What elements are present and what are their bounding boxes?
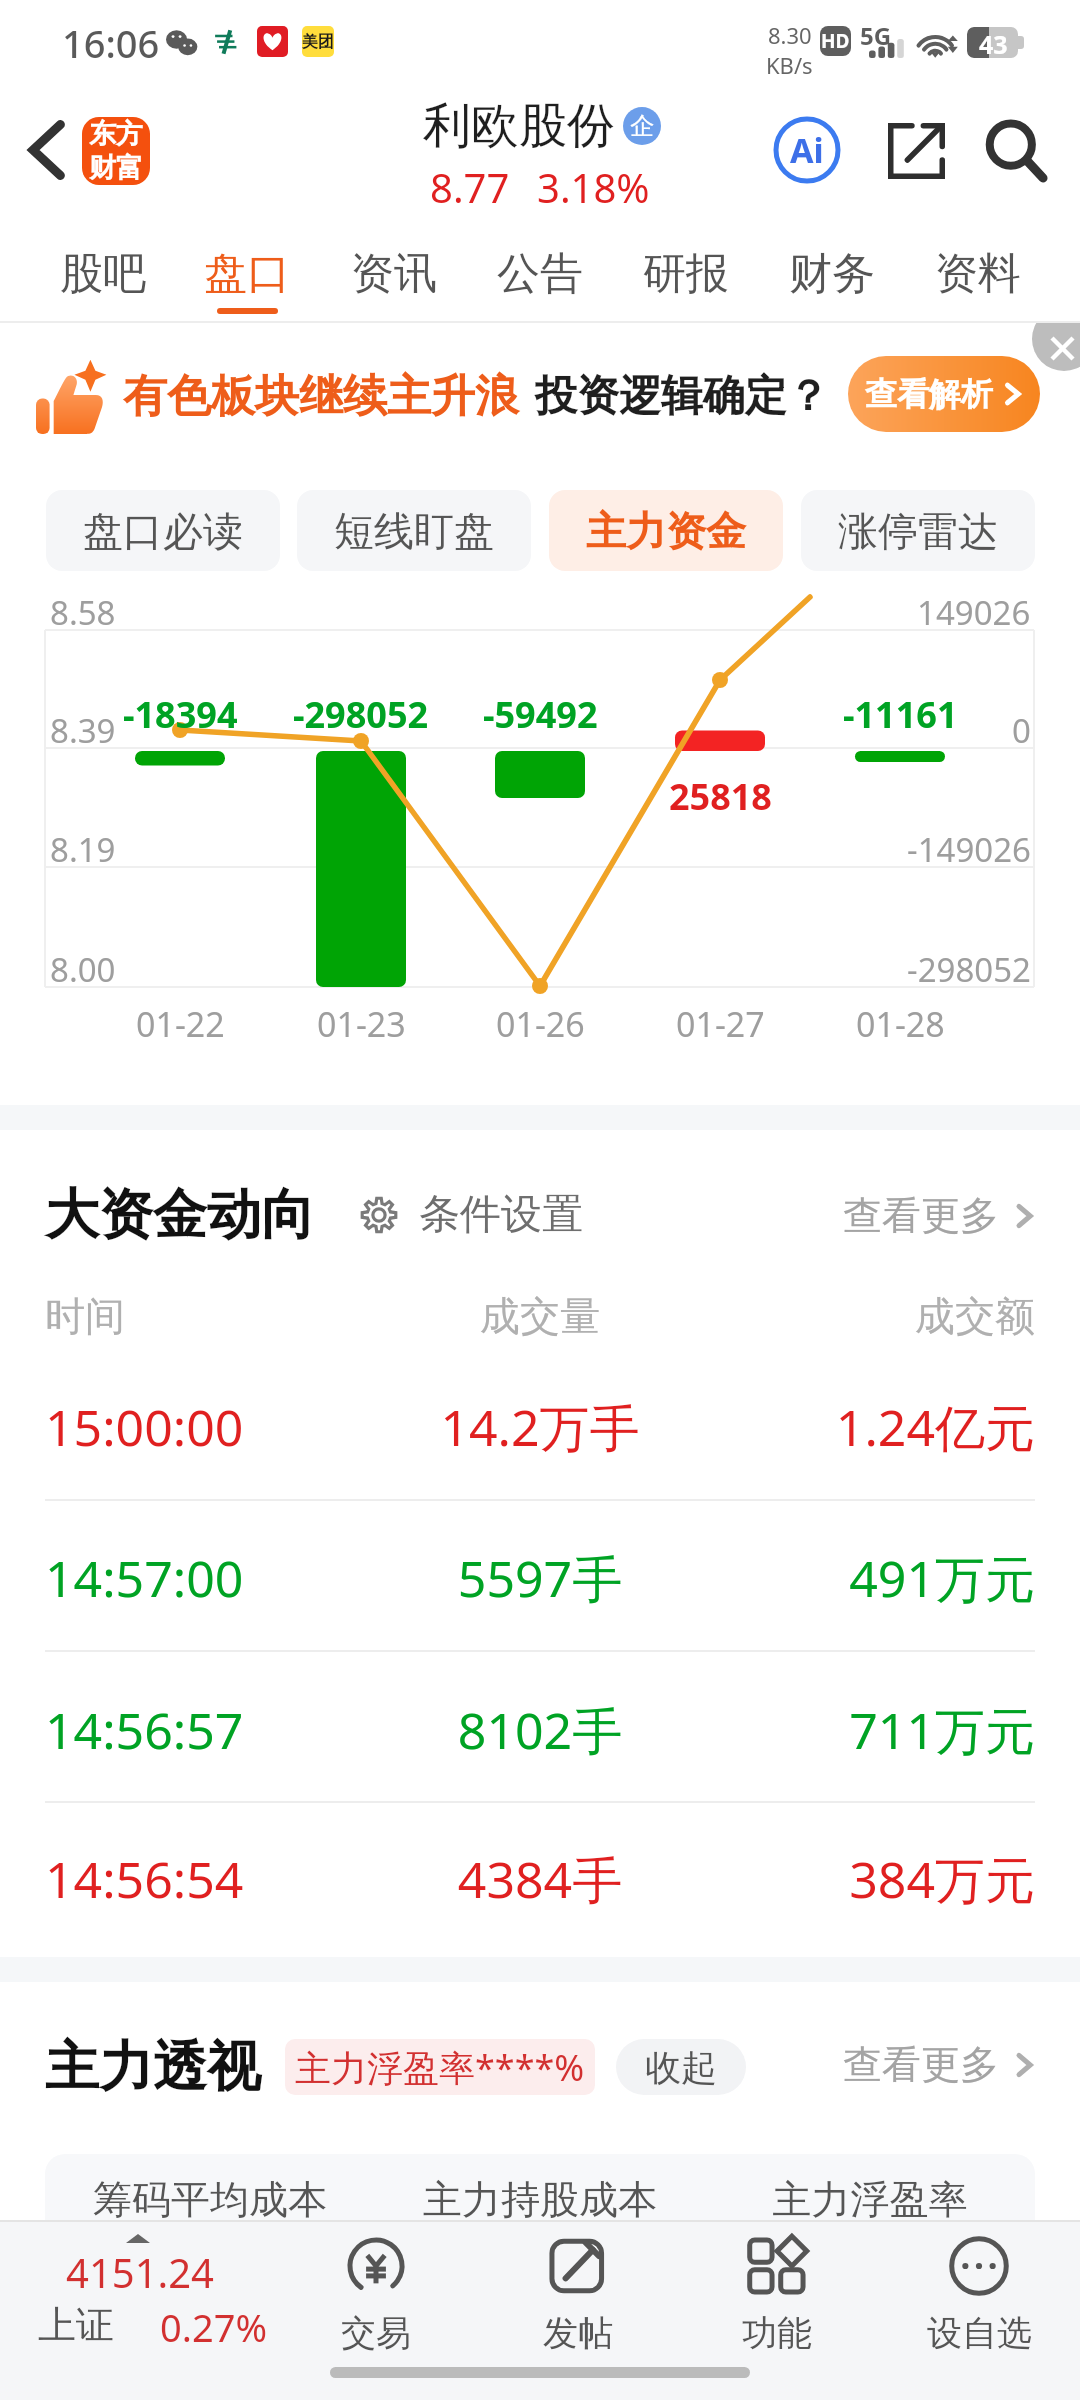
button[interactable]: Back: [4, 107, 88, 193]
button[interactable]: 公告: [470, 215, 610, 323]
staticText: 时间: [45, 1291, 375, 1341]
button[interactable]: 资料: [908, 215, 1048, 323]
staticText: 有色板块继续主升浪: [123, 369, 519, 424]
staticText: 资料: [935, 247, 1021, 301]
staticText: -298052: [293, 690, 429, 739]
button[interactable]: Close: [1032, 323, 1080, 371]
staticText: 16:06: [62, 17, 160, 69]
button[interactable]: 发帖: [488, 2235, 668, 2380]
staticText: 财务: [789, 247, 875, 301]
staticText: 15:00:00: [45, 1393, 375, 1461]
staticText: 384万元: [705, 1845, 1035, 1913]
staticText: 5597手: [375, 1544, 705, 1612]
button[interactable]: 主力浮盈率****%: [285, 2039, 595, 2095]
button[interactable]: 14:56:54: [0, 1805, 1080, 1953]
staticText: -149026: [907, 827, 1031, 872]
button[interactable]: 盘口: [177, 215, 317, 323]
staticText: 主力浮盈率****%: [295, 2043, 585, 2092]
staticText: 查看更多: [843, 1191, 999, 1240]
staticText: 查看更多: [843, 2040, 999, 2089]
staticText: 0.27%: [160, 2301, 267, 2353]
staticText: 01-22: [136, 1001, 225, 1047]
staticText: 01-23: [317, 1001, 406, 1047]
button[interactable]: 14:56:57: [0, 1656, 1080, 1804]
staticText: 25818: [669, 772, 772, 821]
staticText: 主力资金: [586, 506, 746, 556]
staticText: 8.58: [50, 590, 116, 635]
button[interactable]: 4151.24: [8, 2228, 300, 2376]
button[interactable]: 研报: [616, 215, 756, 323]
staticText: 涨停雷达: [838, 506, 998, 556]
staticText: 功能: [742, 2311, 812, 2355]
staticText: 8.19: [50, 827, 116, 872]
staticText: 短线盯盘: [334, 506, 494, 556]
button[interactable]: 短线盯盘: [297, 490, 531, 571]
staticText: -59492: [483, 690, 598, 739]
button[interactable]: 东方: [82, 117, 150, 185]
staticText: 条件设置: [419, 1189, 583, 1241]
staticText: 149026: [917, 590, 1031, 635]
button[interactable]: Search: [986, 121, 1048, 183]
staticText: 5G: [860, 19, 892, 52]
staticText: 8102手: [375, 1696, 705, 1764]
staticText: KB/s: [766, 50, 813, 80]
button[interactable]: 财务: [762, 215, 902, 323]
staticText: 14:56:57: [45, 1696, 375, 1764]
button[interactable]: 涨停雷达: [801, 490, 1035, 571]
staticText: 1.24亿元: [705, 1393, 1035, 1461]
button[interactable]: 交易: [286, 2235, 466, 2380]
staticText: 01-28: [856, 1001, 945, 1047]
button[interactable]: 条件设置: [361, 1189, 583, 1241]
staticText: 8.00: [50, 947, 116, 992]
button[interactable]: 设自选: [889, 2235, 1069, 2380]
staticText: 3.18%: [537, 160, 650, 214]
staticText: 盘口: [204, 247, 290, 301]
staticText: 4384手: [375, 1845, 705, 1913]
staticText: 14.2万手: [375, 1393, 705, 1461]
staticText: 研报: [643, 247, 729, 301]
button[interactable]: AI assistant: [773, 116, 841, 184]
staticText: 公告: [497, 247, 583, 301]
staticText: 主力持股成本: [375, 2175, 705, 2224]
staticText: 发帖: [543, 2311, 613, 2355]
button[interactable]: 功能: [687, 2235, 867, 2380]
button[interactable]: 资讯: [324, 215, 464, 323]
staticText: 成交额: [705, 1291, 1035, 1341]
staticText: 盘口必读: [83, 506, 243, 556]
staticText: 交易: [341, 2311, 411, 2355]
button[interactable]: Share: [888, 123, 945, 179]
button[interactable]: 股吧: [33, 215, 173, 323]
staticText: Ai: [790, 127, 824, 173]
staticText: -11161: [843, 690, 958, 739]
staticText: 查看解析: [865, 374, 993, 414]
staticText: 资讯: [351, 247, 437, 301]
button[interactable]: 盘口必读: [46, 490, 280, 571]
staticText: 成交量: [375, 1291, 705, 1341]
button[interactable]: 15:00:00: [0, 1353, 1080, 1501]
button[interactable]: 14:57:00: [0, 1504, 1080, 1652]
button[interactable]: 主力资金: [549, 490, 783, 571]
staticText: 491万元: [705, 1544, 1035, 1612]
staticText: 01-26: [496, 1001, 585, 1047]
staticText: 筹码平均成本: [45, 2175, 375, 2224]
staticText: 0: [1012, 708, 1031, 753]
button[interactable]: 查看解析: [848, 356, 1040, 432]
staticText: 43: [979, 27, 1008, 58]
staticText: 收起: [645, 2045, 717, 2090]
staticText: 企: [630, 111, 654, 141]
staticText: 8.39: [50, 708, 116, 753]
staticText: 股吧: [60, 247, 146, 301]
staticText: 美团: [302, 32, 334, 52]
staticText: 大资金动向: [45, 1181, 315, 1249]
staticText: 设自选: [927, 2311, 1032, 2355]
button[interactable]: 有色板块继续主升浪: [0, 335, 1080, 445]
staticText: 8.77: [430, 160, 510, 214]
staticText: 14:57:00: [45, 1544, 375, 1612]
button[interactable]: 收起: [616, 2039, 746, 2095]
staticText: 财富: [89, 151, 143, 185]
button[interactable]: 查看更多: [843, 2040, 1037, 2089]
staticText: -18394: [123, 690, 238, 739]
staticText: 利欧股份: [423, 96, 615, 156]
staticText: -298052: [907, 947, 1031, 992]
button[interactable]: 查看更多: [843, 1191, 1037, 1240]
